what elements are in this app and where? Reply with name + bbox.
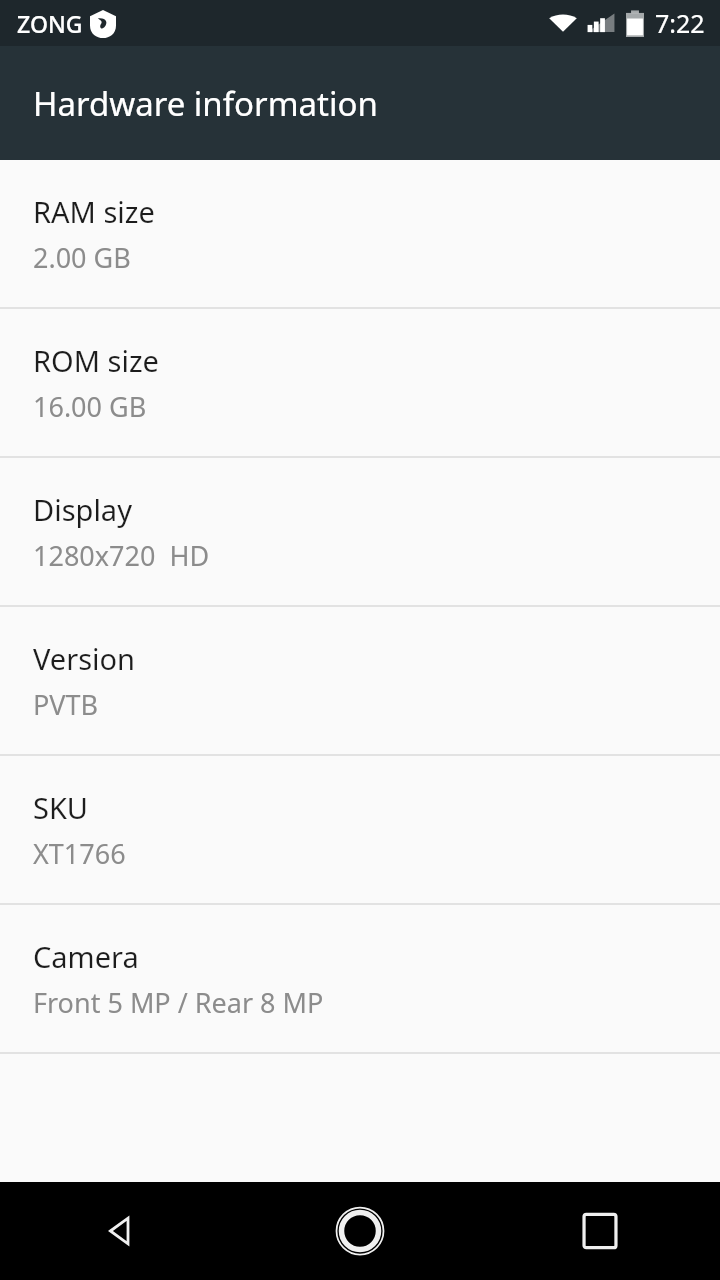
staticText: 7:22	[655, 6, 705, 40]
button[interactable]: SKU	[0, 756, 720, 903]
button[interactable]: Back	[0, 1182, 240, 1280]
staticText: Display	[33, 490, 132, 529]
button[interactable]: Recent apps	[480, 1182, 720, 1280]
button[interactable]: Version	[0, 607, 720, 754]
staticText: 16.00 GB	[33, 388, 147, 425]
staticText: PVTB	[33, 686, 99, 723]
button[interactable]: Display	[0, 458, 720, 605]
button[interactable]: RAM size	[0, 160, 720, 307]
staticText: Hardware information	[33, 81, 378, 126]
staticText: RAM size	[33, 192, 155, 231]
staticText: SKU	[33, 788, 89, 827]
staticText: XT1766	[33, 835, 126, 872]
staticText: 1280x720 HD	[33, 537, 210, 574]
staticText: 2.00 GB	[33, 239, 131, 276]
button[interactable]: Camera	[0, 905, 720, 1052]
button[interactable]: Home	[240, 1182, 480, 1280]
staticText: ROM size	[33, 341, 159, 380]
button[interactable]: ROM size	[0, 309, 720, 456]
staticText: Front 5 MP / Rear 8 MP	[33, 984, 324, 1021]
staticText: Version	[33, 639, 135, 678]
staticText: ZONG	[17, 8, 83, 39]
staticText: Camera	[33, 937, 139, 976]
